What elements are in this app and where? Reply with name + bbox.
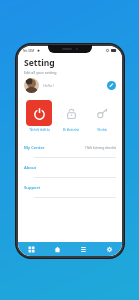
staticText: Tắt hết thiết bị [29,128,50,132]
button[interactable]: Hello ! [24,78,116,93]
staticText: Support [24,185,41,191]
staticText: Edit all your setting [24,70,57,75]
button[interactable]: Edit profile [107,81,116,90]
button[interactable]: Về nhà [86,100,117,132]
staticText: Setting [24,57,55,69]
button[interactable]: About [18,158,122,178]
button[interactable]: Home [44,242,70,256]
button[interactable]: Settings [96,242,122,256]
staticText: 12:28 PM [66,49,80,53]
button[interactable]: Support [18,178,122,198]
button[interactable]: Đi khỏi nhà [55,100,86,132]
staticText: No SIM [23,49,35,53]
staticText: Đi khỏi nhà [63,128,79,132]
staticText: About [24,165,37,171]
button[interactable]: Dashboard [18,242,44,256]
button[interactable]: Tắt hết thiết bị [23,100,55,132]
staticText: Hello ! [43,83,55,88]
button[interactable]: My Center [18,138,122,158]
staticText: Về nhà [97,128,107,132]
staticText: My Center [24,145,45,151]
button[interactable]: List [70,242,96,256]
staticText: Thiết bị trong căn nhà [85,146,116,150]
